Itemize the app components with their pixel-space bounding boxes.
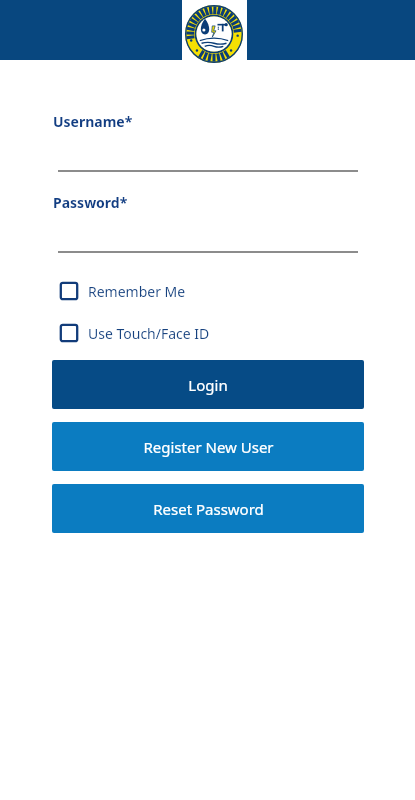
button[interactable]: Remember Me <box>59 281 186 301</box>
staticText: Use Touch/Face ID <box>88 324 210 343</box>
button[interactable]: Login <box>52 360 364 409</box>
other: Sylacauga Utilities Board logo <box>185 5 243 63</box>
staticText: Register New User <box>143 437 274 457</box>
button[interactable]: Use Touch/Face ID <box>59 323 210 343</box>
staticText: Password* <box>53 193 128 212</box>
button[interactable]: Reset Password <box>52 484 364 533</box>
staticText: Remember Me <box>88 282 186 301</box>
staticText: Username* <box>53 112 133 131</box>
staticText: Login <box>188 375 228 395</box>
staticText: Reset Password <box>153 499 264 519</box>
button[interactable]: Register New User <box>52 422 364 471</box>
